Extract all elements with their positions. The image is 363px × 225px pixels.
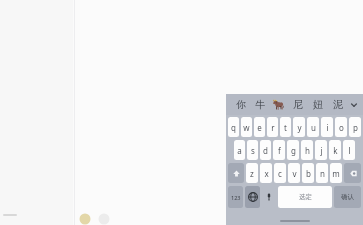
staticText: 泥 bbox=[333, 98, 343, 111]
button[interactable]: x bbox=[260, 163, 272, 183]
button[interactable]: m bbox=[330, 163, 342, 183]
button[interactable]: q bbox=[228, 117, 239, 137]
button[interactable]: d bbox=[260, 140, 271, 160]
button[interactable]: g bbox=[287, 140, 299, 160]
staticText: 你 bbox=[236, 98, 246, 111]
staticText: v bbox=[292, 168, 297, 179]
staticText: y bbox=[297, 122, 302, 133]
button[interactable]: i bbox=[321, 117, 333, 137]
staticText: h bbox=[305, 145, 310, 156]
button[interactable]: u bbox=[307, 117, 319, 137]
staticText: s bbox=[251, 145, 255, 156]
staticText: 🐂 bbox=[272, 99, 285, 111]
staticText: 选定 bbox=[299, 193, 312, 201]
button[interactable]: o bbox=[335, 117, 347, 137]
button[interactable]: n bbox=[316, 163, 328, 183]
staticText: w bbox=[243, 122, 250, 133]
button[interactable]: 确认 bbox=[334, 186, 361, 208]
button[interactable]: Switch language bbox=[245, 186, 260, 208]
staticText: i bbox=[326, 122, 329, 133]
button[interactable]: t bbox=[280, 117, 291, 137]
button[interactable]: Backspace bbox=[344, 163, 361, 183]
button[interactable]: e bbox=[254, 117, 265, 137]
button[interactable]: z bbox=[246, 163, 258, 183]
button[interactable]: 牛 bbox=[250, 94, 269, 115]
staticText: 尼 bbox=[293, 98, 303, 111]
staticText: c bbox=[278, 168, 282, 179]
button[interactable]: 尼 bbox=[288, 94, 308, 115]
button[interactable]: c bbox=[274, 163, 286, 183]
button[interactable]: p bbox=[349, 117, 361, 137]
staticText: u bbox=[311, 122, 316, 133]
staticText: n bbox=[320, 168, 325, 179]
staticText: b bbox=[306, 168, 311, 179]
staticText: a bbox=[237, 145, 242, 156]
staticText: 妞 bbox=[313, 98, 323, 111]
staticText: r bbox=[271, 122, 275, 133]
staticText: x bbox=[264, 168, 269, 179]
staticText: g bbox=[291, 145, 296, 156]
button[interactable]: v bbox=[288, 163, 300, 183]
button[interactable]: Shift bbox=[228, 163, 244, 183]
button[interactable]: 选定 bbox=[278, 186, 332, 208]
staticText: p bbox=[353, 122, 358, 133]
button[interactable]: s bbox=[247, 140, 258, 160]
button[interactable]: b bbox=[302, 163, 314, 183]
button[interactable]: r bbox=[267, 117, 278, 137]
staticText: t bbox=[284, 122, 287, 133]
staticText: l bbox=[348, 145, 351, 156]
button[interactable]: k bbox=[329, 140, 341, 160]
button[interactable]: a bbox=[234, 140, 245, 160]
button[interactable]: Voice input bbox=[262, 186, 276, 208]
staticText: 牛 bbox=[255, 98, 265, 111]
staticText: 123 bbox=[231, 194, 241, 201]
staticText: o bbox=[339, 122, 344, 133]
staticText: k bbox=[333, 145, 338, 156]
button[interactable]: Expand candidates bbox=[348, 94, 360, 115]
staticText: z bbox=[250, 168, 254, 179]
staticText: q bbox=[231, 122, 236, 133]
staticText: d bbox=[263, 145, 268, 156]
button[interactable]: y bbox=[293, 117, 305, 137]
button[interactable]: h bbox=[301, 140, 313, 160]
button[interactable]: w bbox=[241, 117, 252, 137]
button[interactable]: l bbox=[343, 140, 355, 160]
staticText: f bbox=[278, 145, 281, 156]
button[interactable]: f bbox=[273, 140, 285, 160]
button[interactable]: 你 bbox=[231, 94, 250, 115]
staticText: m bbox=[332, 168, 340, 179]
button[interactable]: j bbox=[315, 140, 327, 160]
button[interactable]: 123 bbox=[228, 186, 243, 208]
staticText: e bbox=[257, 122, 262, 133]
button[interactable]: 妞 bbox=[308, 94, 328, 115]
button[interactable]: 泥 bbox=[328, 94, 348, 115]
staticText: 确认 bbox=[341, 193, 354, 201]
staticText: j bbox=[320, 145, 323, 156]
button[interactable]: 🐂 bbox=[269, 94, 288, 115]
